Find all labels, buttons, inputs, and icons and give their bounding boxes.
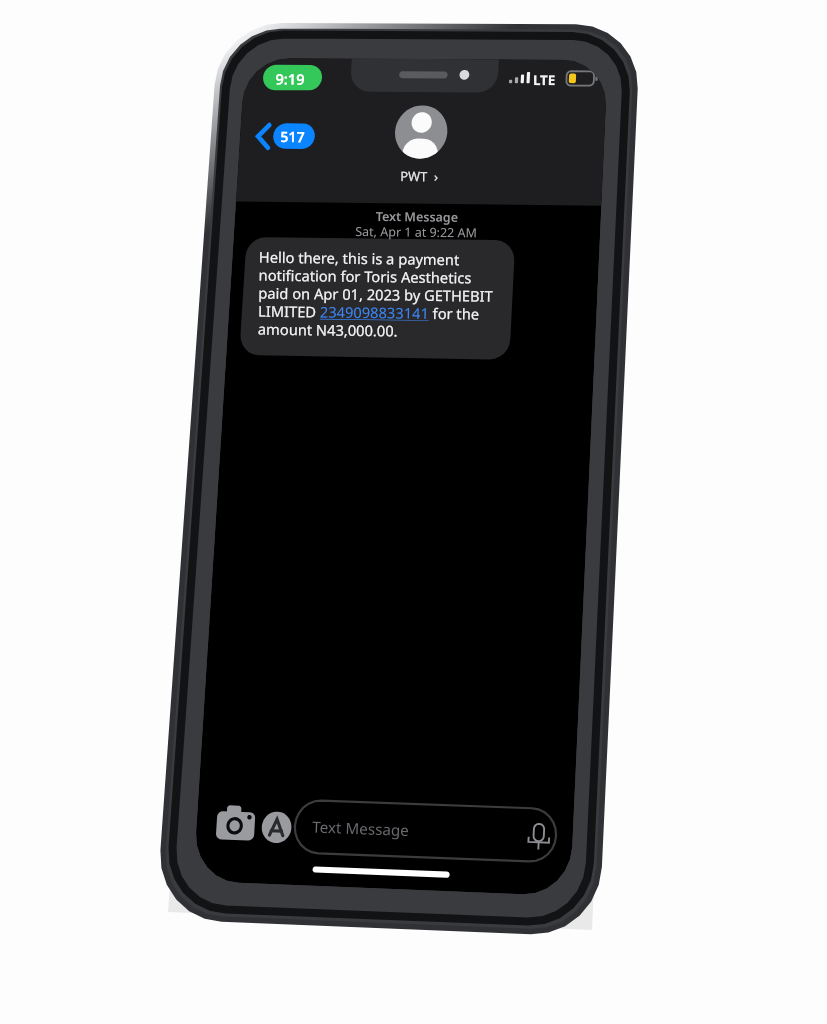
button[interactable]: Dictate audio message [516,846,554,884]
button[interactable]: Camera [186,818,234,866]
button[interactable]: Back, 517 unread [246,96,322,138]
button[interactable] [290,826,542,886]
button[interactable] [232,218,516,338]
button[interactable]: PWT contact info [378,90,470,180]
button[interactable]: Apps [236,820,284,868]
